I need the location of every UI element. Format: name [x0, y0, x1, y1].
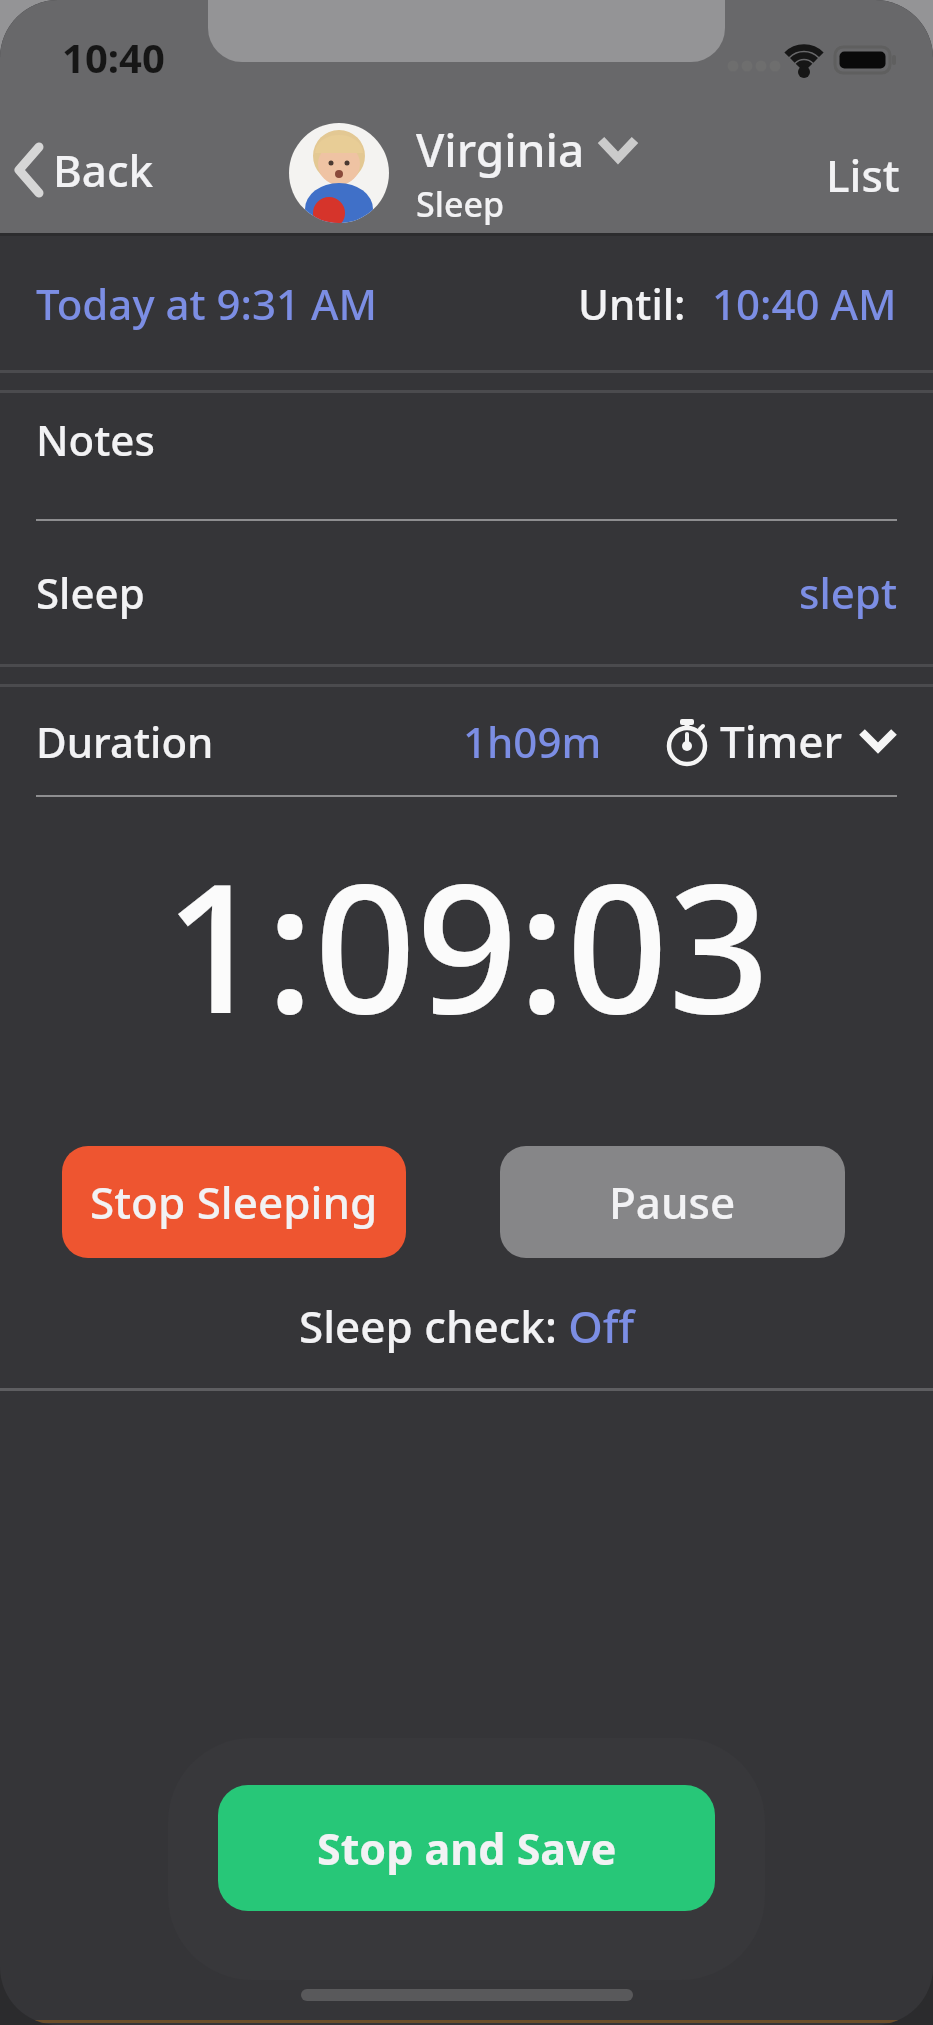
button[interactable]: Pause	[500, 1146, 845, 1258]
button[interactable]: Stop Sleeping	[62, 1146, 406, 1258]
button[interactable]: Timer	[664, 711, 897, 771]
button[interactable]	[289, 123, 389, 223]
staticText: Stop and Save	[317, 1819, 617, 1878]
button[interactable]: Sleep	[36, 521, 897, 664]
staticText: Duration	[36, 713, 214, 770]
staticText: Sleep	[416, 181, 504, 227]
staticText: slept	[799, 564, 897, 621]
staticText: 1h09m	[463, 713, 602, 770]
staticText: 1:09:03	[164, 823, 770, 1065]
staticText: Back	[53, 140, 154, 200]
staticText: Stop Sleeping	[90, 1172, 378, 1232]
staticText: Sleep check: Off	[299, 1296, 635, 1356]
staticText: 10:40 AM	[712, 275, 897, 332]
staticText: Sleep	[36, 564, 145, 621]
button[interactable]: Stop and Save	[218, 1785, 715, 1911]
staticText: Notes	[36, 411, 155, 468]
staticText: Until:	[578, 275, 686, 332]
button[interactable]: Back	[14, 140, 154, 200]
button[interactable]: Sleep check: Off	[0, 1296, 933, 1356]
button[interactable]: List	[826, 145, 900, 205]
button[interactable]: Notes	[0, 393, 933, 519]
staticText: Today at 9:31 AM	[36, 275, 377, 332]
staticText: 10:40	[62, 30, 165, 84]
staticText: Timer	[720, 711, 843, 771]
button[interactable]	[597, 136, 639, 164]
staticText: List	[826, 145, 900, 205]
staticText: Pause	[609, 1172, 736, 1232]
staticText: Virginia	[416, 118, 585, 181]
button[interactable]: Today at 9:31 AM	[36, 236, 897, 370]
